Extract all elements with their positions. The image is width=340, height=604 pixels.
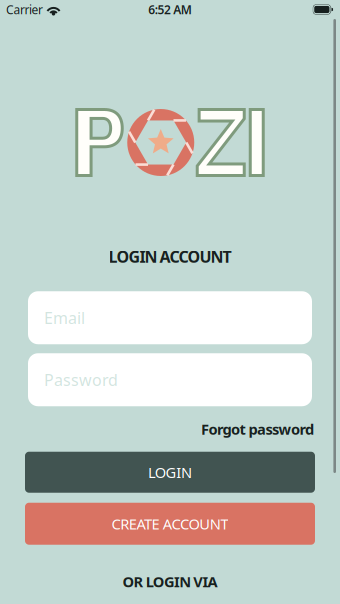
staticText: Password xyxy=(44,369,118,390)
staticText: Email xyxy=(44,307,85,328)
button[interactable]: CREATE ACCOUNT xyxy=(25,503,315,545)
staticText: Forgot password xyxy=(201,419,314,439)
staticText: Carrier xyxy=(6,1,43,17)
staticText: LOGIN xyxy=(148,462,192,482)
staticText: OR LOGIN VIA xyxy=(122,572,218,591)
staticText: CREATE ACCOUNT xyxy=(112,514,228,533)
staticText: 6:52 AM xyxy=(148,1,192,17)
button[interactable]: LOGIN xyxy=(25,452,315,493)
button[interactable]: Forgot password xyxy=(201,419,314,439)
staticText: LOGIN ACCOUNT xyxy=(108,246,231,267)
